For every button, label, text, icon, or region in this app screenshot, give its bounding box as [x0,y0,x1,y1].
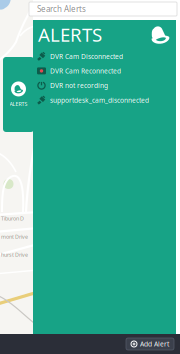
staticText: DVR Cam Reconnected [50,66,121,75]
button[interactable]: Add Alert [126,338,174,350]
staticText: ALERTS [38,22,102,47]
staticText: supportdesk_cam_disconnected [50,96,149,105]
staticText: Tiburon D [1,215,24,222]
button[interactable]: DVR not recording [33,78,176,93]
button[interactable]: DVR Cam Disconnected [33,49,176,64]
staticText: ALERTS [9,100,27,108]
button[interactable]: Notifications [148,22,172,46]
staticText: mont Drive [1,233,28,240]
staticText: hurst Drive [1,251,28,258]
staticText: DVR Cam Disconnected [50,52,123,61]
staticText: DVR not recording [50,81,108,90]
button[interactable]: supportdesk_cam_disconnected [33,93,176,107]
staticText: Add Alert [140,340,169,348]
button[interactable]: DVR Cam Reconnected [33,64,176,78]
button[interactable]: Search Alerts [29,2,177,16]
staticText: Search Alerts [37,4,86,14]
button[interactable]: ALERTS [3,57,34,132]
